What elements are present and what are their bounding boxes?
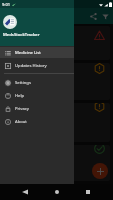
button[interactable]: Settings bbox=[0, 77, 74, 88]
staticText: Privacy bbox=[15, 106, 29, 112]
button[interactable]: Medicine List bbox=[0, 47, 74, 58]
button[interactable]: Share bbox=[87, 10, 99, 22]
button[interactable]: Recent apps bbox=[81, 185, 95, 199]
button[interactable] bbox=[3, 145, 110, 181]
button[interactable]: Help bbox=[0, 90, 74, 101]
staticText: About bbox=[15, 119, 27, 125]
button[interactable] bbox=[3, 63, 110, 100]
staticText: 9:01 bbox=[2, 2, 10, 7]
button[interactable]: Home bbox=[50, 185, 64, 199]
button[interactable] bbox=[3, 103, 110, 142]
staticText: MedsStockTracker bbox=[3, 32, 40, 38]
button[interactable] bbox=[3, 26, 110, 60]
button[interactable]: Filter bbox=[99, 10, 111, 22]
staticText: Medicine List bbox=[15, 50, 41, 56]
staticText: Settings bbox=[15, 80, 31, 86]
button[interactable]: About bbox=[0, 116, 74, 127]
staticText: Help bbox=[15, 93, 25, 99]
staticText: Updates History bbox=[15, 63, 47, 69]
button[interactable]: Privacy bbox=[0, 103, 74, 114]
button[interactable]: Updates History bbox=[0, 60, 74, 71]
button[interactable]: Add medicine bbox=[92, 163, 108, 179]
button[interactable]: Back bbox=[18, 185, 32, 199]
